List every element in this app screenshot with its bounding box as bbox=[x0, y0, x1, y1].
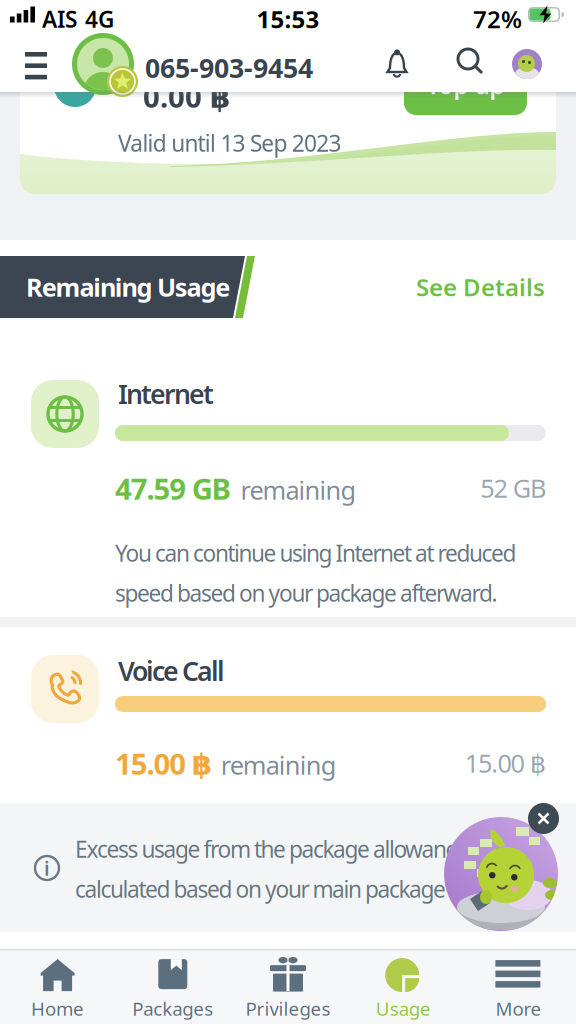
staticText: 0.00 ฿ bbox=[143, 77, 230, 116]
staticText: Usage bbox=[376, 996, 431, 1021]
button[interactable]: Privileges bbox=[230, 952, 346, 1024]
button[interactable]: More bbox=[461, 952, 576, 1024]
button[interactable]: Menu bbox=[0, 30, 70, 92]
button[interactable]: Notifications bbox=[381, 48, 413, 80]
staticText: AIS bbox=[42, 4, 77, 34]
staticText: More bbox=[495, 996, 541, 1021]
staticText: Privileges bbox=[245, 996, 330, 1021]
staticText: Home bbox=[31, 996, 84, 1021]
button[interactable]: Close bbox=[528, 803, 559, 834]
staticText: Internet bbox=[118, 376, 214, 411]
button[interactable]: Profile bbox=[72, 33, 134, 95]
staticText: 52 GB bbox=[480, 471, 546, 505]
staticText: Remaining Usage bbox=[26, 270, 230, 304]
staticText: See Details bbox=[416, 271, 545, 303]
button[interactable]: 065-903-9454 bbox=[145, 50, 313, 85]
staticText: Voice Call bbox=[118, 653, 225, 688]
button[interactable]: Top up bbox=[404, 71, 527, 115]
staticText: You can continue using Internet at reduc… bbox=[115, 538, 516, 568]
staticText: 47.59 GB bbox=[115, 469, 232, 508]
button[interactable]: Search bbox=[455, 47, 487, 79]
staticText: 72% bbox=[473, 3, 522, 35]
staticText: calculated based on your main package ra… bbox=[75, 874, 487, 904]
staticText: Top up bbox=[426, 69, 504, 101]
staticText: 15.00 ฿ bbox=[115, 744, 212, 783]
staticText: 065-903-9454 bbox=[145, 50, 313, 85]
button[interactable]: Account bbox=[512, 49, 542, 79]
button[interactable]: Usage bbox=[346, 952, 461, 1024]
staticText: 15:53 bbox=[256, 3, 319, 35]
button[interactable]: Home bbox=[0, 952, 115, 1024]
staticText: 4G bbox=[85, 4, 114, 34]
staticText: Valid until 13 Sep 2023 bbox=[118, 128, 341, 158]
button[interactable]: Packages bbox=[115, 952, 230, 1024]
staticText: remaining bbox=[221, 748, 337, 782]
staticText: 15.00 ฿ bbox=[465, 746, 546, 780]
staticText: Excess usage from the package allowance … bbox=[75, 834, 531, 864]
button[interactable]: See Details bbox=[416, 271, 545, 303]
staticText: remaining bbox=[241, 473, 357, 507]
staticText: speed based on your package afterward. bbox=[115, 578, 497, 608]
staticText: Packages bbox=[132, 996, 213, 1021]
staticText: i bbox=[44, 855, 50, 881]
